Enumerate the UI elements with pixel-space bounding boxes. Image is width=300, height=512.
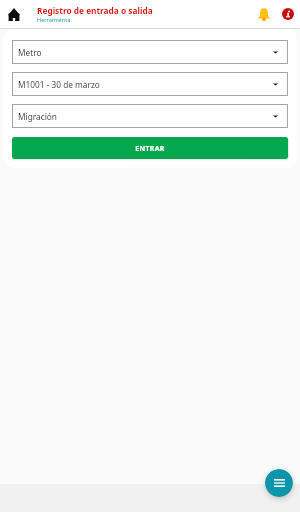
staticText: Migración	[18, 111, 57, 122]
button[interactable]: Info	[276, 0, 300, 28]
button[interactable]: Home	[0, 0, 28, 28]
button[interactable]: ENTRAR	[12, 137, 288, 159]
staticText: Metro	[18, 47, 42, 58]
button[interactable]: M1001 - 30 de marzo	[12, 72, 288, 96]
staticText: M1001 - 30 de marzo	[18, 79, 100, 90]
staticText: Registro de entrada o salida	[37, 5, 153, 16]
button[interactable]: Migración	[12, 104, 288, 128]
button[interactable]: Metro	[12, 40, 288, 64]
staticText: ENTRAR	[135, 144, 165, 153]
button[interactable]: Menu	[265, 469, 293, 497]
button[interactable]: Notifications	[252, 0, 276, 28]
staticText: Herramienta	[37, 16, 71, 24]
